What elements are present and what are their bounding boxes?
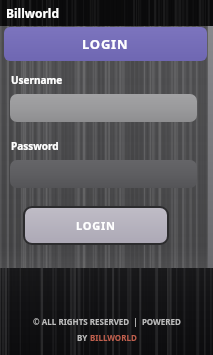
staticText: Password (11, 139, 59, 153)
staticText: Billworld (6, 5, 60, 21)
staticText: Username (11, 73, 63, 87)
staticText: © ALL RIGHTS RESERVED | POWERED (33, 316, 181, 327)
button[interactable] (10, 94, 197, 122)
staticText: LOGIN (82, 35, 129, 53)
button[interactable]: LOGIN (4, 27, 207, 61)
button[interactable]: LOGIN (25, 208, 167, 243)
button[interactable] (10, 160, 197, 188)
staticText: BY (77, 332, 90, 343)
staticText: LOGIN (76, 218, 116, 233)
staticText: BILLWORLD (90, 332, 137, 343)
